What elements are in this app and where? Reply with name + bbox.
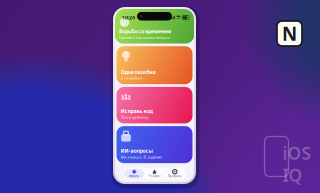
staticText: 10:24 bbox=[122, 14, 135, 21]
button[interactable]: Исправь код bbox=[116, 87, 192, 123]
staticText: и ты выбыл bbox=[120, 75, 141, 81]
staticText: IQ bbox=[282, 163, 302, 186]
button[interactable]: Рейтинг bbox=[144, 169, 165, 178]
button[interactable]: Профиль bbox=[165, 169, 185, 178]
button[interactable]: Борьба со временем bbox=[115, 9, 194, 43]
staticText: ИИ-вопросы bbox=[120, 147, 153, 154]
button[interactable]: Одна ошибка bbox=[116, 46, 192, 84]
staticText: Как хочешь. В задания bbox=[120, 154, 161, 160]
staticText: Рейтинг bbox=[148, 174, 160, 178]
staticText: iOS bbox=[282, 141, 311, 164]
staticText: Реши проблему bbox=[120, 115, 148, 120]
staticText: Одна ошибка bbox=[120, 68, 155, 75]
button[interactable]: ИИ-вопросы bbox=[116, 126, 192, 163]
staticText: Считайте как можно больше bbox=[119, 35, 170, 40]
staticText: Профиль bbox=[168, 174, 182, 178]
staticText: Борьба со временем bbox=[119, 28, 171, 35]
staticText: Играть bbox=[129, 174, 139, 178]
staticText: N bbox=[282, 21, 297, 46]
staticText: Исправь код bbox=[120, 107, 152, 115]
button[interactable]: Играть bbox=[124, 169, 144, 178]
